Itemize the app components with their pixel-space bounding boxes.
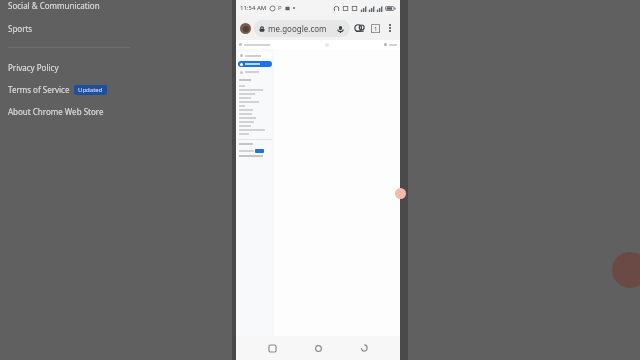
button[interactable]: Sync	[353, 22, 366, 35]
button[interactable]	[238, 92, 272, 96]
button[interactable]	[238, 120, 272, 124]
button[interactable]: Recent apps	[262, 338, 282, 358]
button[interactable]: Switch tabs	[369, 22, 382, 35]
button[interactable]	[238, 100, 272, 104]
staticText: Terms of Service	[8, 84, 70, 95]
button[interactable]	[238, 124, 272, 128]
staticText: P	[278, 4, 282, 12]
button[interactable]	[238, 104, 272, 108]
staticText: me.google.com	[268, 23, 327, 34]
button[interactable]	[238, 61, 272, 67]
button[interactable]	[238, 116, 272, 120]
button[interactable]	[238, 84, 272, 88]
button[interactable]: Voice search	[335, 24, 345, 34]
button[interactable]	[238, 96, 272, 100]
button[interactable]	[238, 148, 272, 153]
button[interactable]	[238, 112, 272, 116]
button[interactable]: Account	[240, 23, 251, 34]
button[interactable]	[238, 108, 272, 112]
button[interactable]: me.google.com	[254, 20, 350, 37]
staticText: 1	[374, 25, 378, 33]
button[interactable]: Home	[308, 338, 328, 358]
button[interactable]: More options	[384, 22, 396, 34]
button[interactable]	[238, 128, 272, 132]
staticText: Sports	[8, 23, 33, 34]
staticText: Updated	[78, 86, 103, 94]
button[interactable]: Back	[354, 338, 374, 358]
button[interactable]	[238, 88, 272, 92]
button[interactable]	[238, 132, 272, 136]
staticText: Privacy Policy	[8, 62, 59, 73]
staticText: Social & Communication	[8, 0, 100, 11]
button[interactable]	[238, 52, 272, 58]
button[interactable]	[238, 69, 272, 75]
staticText: 11:54 AM	[240, 4, 267, 12]
staticText: About Chrome Web Store	[8, 106, 104, 117]
